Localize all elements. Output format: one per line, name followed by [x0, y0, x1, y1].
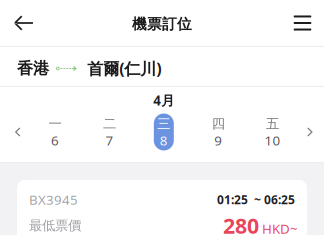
staticText: 01:25 ~ 06:25 [217, 191, 295, 207]
staticText: 二 [103, 116, 116, 132]
staticText: 最低票價 [29, 217, 81, 234]
button[interactable]: Back [0, 0, 47, 46]
staticText: 四 [212, 116, 225, 132]
staticText: 10 [265, 131, 281, 149]
button[interactable]: BX3945 [17, 180, 307, 235]
staticText: HKD~ [262, 220, 298, 235]
button[interactable]: Previous days [2, 109, 34, 155]
staticText: 4月 [153, 91, 174, 109]
button[interactable]: 五 [245, 109, 300, 155]
button[interactable]: Menu [281, 0, 324, 46]
button[interactable]: 二 [82, 109, 137, 155]
staticText: 香港 [17, 59, 49, 78]
staticText: 一 [48, 116, 61, 132]
staticText: 8 [160, 131, 168, 149]
staticText: 三 [157, 116, 170, 132]
staticText: BX3945 [29, 191, 78, 208]
staticText: 280 [223, 211, 259, 235]
staticText: 7 [105, 131, 113, 149]
staticText: 首爾(仁川) [87, 58, 161, 79]
button[interactable]: 三 [137, 109, 191, 155]
staticText: 6 [51, 131, 59, 149]
staticText: 9 [214, 131, 222, 149]
button[interactable]: 四 [191, 109, 245, 155]
button[interactable]: Next days [294, 109, 324, 155]
staticText: 機票訂位 [132, 15, 192, 33]
staticText: 五 [266, 116, 279, 132]
button[interactable]: 一 [28, 109, 82, 155]
